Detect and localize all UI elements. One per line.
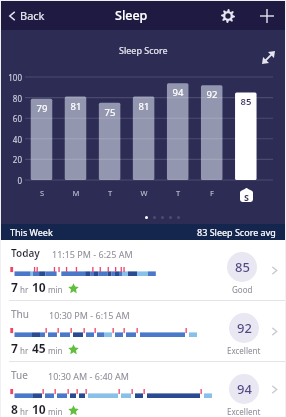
- staticText: hr: [20, 284, 29, 295]
- staticText: Excellent: [227, 345, 261, 356]
- button[interactable]: Settings: [215, 3, 241, 29]
- button[interactable]: Back: [4, 3, 48, 28]
- staticText: W: [133, 188, 155, 198]
- staticText: 11:15 PM - 6:25 AM: [52, 248, 133, 260]
- staticText: 10:30 AM - 6:40 AM: [48, 370, 129, 382]
- staticText: T: [167, 188, 189, 198]
- staticText: 94: [237, 380, 252, 398]
- staticText: 7: [11, 279, 18, 295]
- button[interactable]: Expand chart: [259, 48, 277, 66]
- staticText: T: [99, 188, 121, 198]
- staticText: 83 Sleep Score avg: [197, 226, 276, 238]
- staticText: 8: [11, 401, 18, 417]
- staticText: 40: [1, 134, 22, 145]
- staticText: 10: [32, 279, 46, 295]
- staticText: Sleep Score: [119, 44, 168, 56]
- staticText: 7: [11, 340, 18, 356]
- staticText: Sleep: [115, 7, 148, 24]
- staticText: 80: [1, 93, 22, 104]
- staticText: min: [48, 406, 63, 417]
- staticText: 75: [99, 106, 121, 119]
- staticText: Today: [11, 246, 40, 260]
- staticText: 94: [167, 86, 189, 99]
- staticText: Back: [20, 8, 45, 23]
- staticText: 81: [65, 100, 87, 113]
- staticText: 100: [1, 72, 22, 83]
- staticText: S: [31, 188, 53, 198]
- staticText: min: [48, 345, 63, 356]
- staticText: 85: [235, 95, 257, 108]
- button[interactable]: Add: [255, 4, 279, 28]
- staticText: 92: [201, 88, 223, 101]
- button[interactable]: Tue: [1, 362, 285, 417]
- staticText: 81: [133, 100, 155, 113]
- staticText: 20: [1, 154, 22, 165]
- staticText: Good: [232, 284, 253, 295]
- staticText: 45: [32, 340, 46, 356]
- staticText: This Week: [10, 226, 53, 238]
- staticText: min: [48, 284, 63, 295]
- staticText: Tue: [11, 368, 28, 382]
- staticText: 60: [1, 113, 22, 124]
- staticText: hr: [20, 345, 29, 356]
- staticText: 79: [31, 102, 53, 115]
- staticText: S: [240, 191, 253, 203]
- button[interactable]: Today: [1, 240, 285, 300]
- staticText: 92: [237, 319, 252, 337]
- staticText: Thu: [11, 307, 29, 321]
- staticText: 0: [1, 175, 22, 186]
- staticText: 10: [32, 401, 46, 417]
- staticText: 10:30 PM - 6:15 AM: [49, 309, 130, 321]
- staticText: M: [65, 188, 87, 198]
- staticText: F: [201, 188, 223, 198]
- staticText: hr: [20, 406, 29, 417]
- staticText: Excellent: [227, 406, 261, 417]
- button[interactable]: Thu: [1, 301, 285, 361]
- staticText: 85: [235, 258, 250, 276]
